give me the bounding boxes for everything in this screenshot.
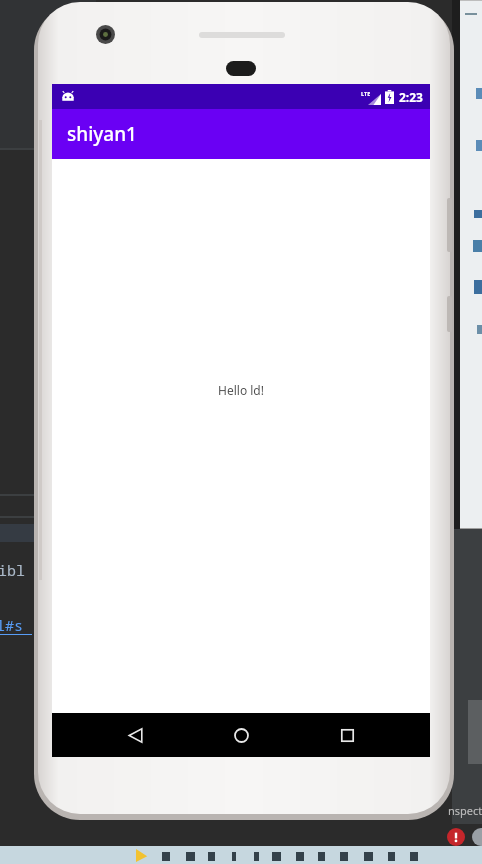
staticText: 2:23	[399, 89, 423, 105]
staticText: nspect	[448, 803, 482, 818]
staticText: shiyan1	[67, 121, 137, 147]
staticText: l#s	[0, 615, 24, 635]
staticText: ibl	[0, 560, 26, 580]
staticText: Hello ld!	[218, 382, 264, 398]
button[interactable]: Back	[112, 713, 158, 757]
button[interactable]: Home	[218, 713, 264, 757]
button[interactable]: Recent apps	[324, 713, 370, 757]
button[interactable]: shiyan1	[52, 109, 430, 159]
staticText: LTE	[361, 90, 371, 97]
